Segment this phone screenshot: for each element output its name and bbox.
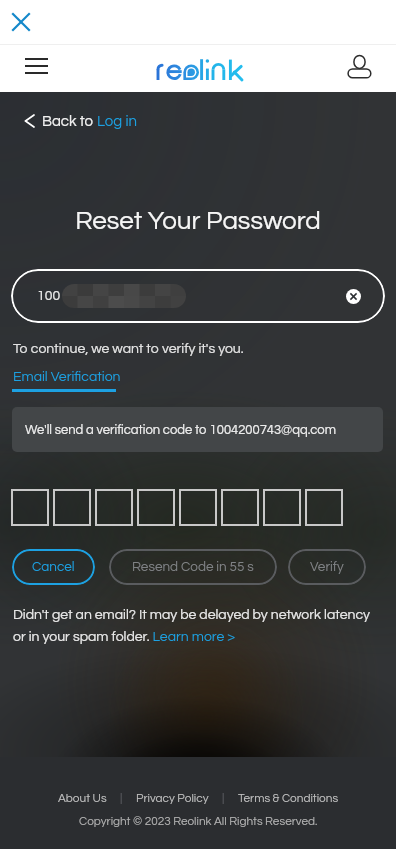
staticText: Didn't get an email? It may be delayed b… — [13, 608, 373, 644]
staticText: Back to — [42, 114, 97, 129]
button[interactable] — [263, 489, 301, 526]
staticText: 100 — [37, 289, 61, 303]
button[interactable]: About Us — [58, 792, 107, 804]
button[interactable]: Cancel — [12, 549, 95, 585]
button[interactable]: Privacy Policy — [136, 792, 209, 804]
button[interactable]: Back to — [24, 109, 137, 133]
button[interactable]: Clear — [346, 289, 361, 304]
button[interactable]: Close — [5, 6, 37, 38]
button[interactable] — [95, 489, 133, 526]
button[interactable]: Terms & Conditions — [238, 792, 339, 804]
button[interactable] — [221, 489, 259, 526]
staticText: Email Verification — [13, 370, 121, 384]
button[interactable] — [11, 489, 49, 526]
button[interactable] — [305, 489, 343, 526]
button[interactable] — [137, 489, 175, 526]
button[interactable]: 100 — [11, 269, 385, 323]
staticText: Log in — [97, 114, 137, 129]
button[interactable] — [179, 489, 217, 526]
staticText: Resend Code in 55 s — [132, 560, 254, 574]
button[interactable]: Verify — [288, 549, 366, 585]
button[interactable]: Resend Code in 55 s — [109, 549, 277, 585]
staticText: Copyright © 2023 Reolink All Rights Rese… — [79, 815, 318, 827]
button[interactable] — [53, 489, 91, 526]
staticText: | — [222, 792, 225, 804]
button[interactable]: Email Verification — [13, 370, 121, 390]
staticText: We'll send a verification code to 100420… — [25, 423, 336, 436]
button[interactable]: Account — [348, 52, 371, 75]
button[interactable]: Menu — [20, 51, 54, 85]
staticText: To continue, we want to verify it's you. — [13, 342, 244, 356]
staticText: Reset Your Password — [0, 208, 396, 235]
staticText: Cancel — [32, 560, 75, 574]
staticText: Verify — [310, 560, 344, 574]
staticText: | — [120, 792, 123, 804]
